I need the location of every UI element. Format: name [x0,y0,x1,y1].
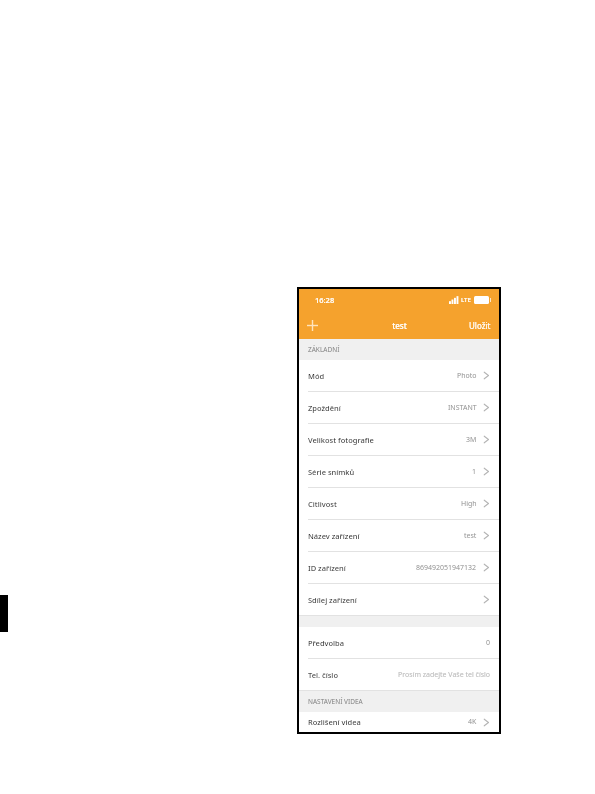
button[interactable]: Sdílej zařízení [299,584,499,616]
staticText: 0 [486,638,491,648]
staticText: 16:28 [315,295,335,305]
staticText: Mód [308,371,325,381]
staticText: ZÁKLADNÍ [308,345,340,354]
staticText: Zpoždění [308,403,341,413]
staticText: NASTAVENÍ VIDEA [308,697,363,706]
button[interactable]: Rozlišení videa [299,712,499,732]
staticText: 1 [472,467,477,477]
staticText: Série snímků [308,467,355,477]
button[interactable]: Velikost fotografie [299,424,499,456]
button[interactable]: ID zařízení [299,552,499,584]
button[interactable]: Add [299,312,325,338]
staticText: 869492051947132 [416,563,477,573]
staticText: test [464,531,477,541]
staticText: Sdílej zařízení [308,595,357,605]
button[interactable]: Zpoždění [299,392,499,424]
staticText: ID zařízení [308,563,346,573]
button[interactable]: Citlivost [299,488,499,520]
staticText: Photo [457,371,477,381]
button[interactable]: Název zařízení [299,520,499,552]
button[interactable]: Tel. číslo [299,659,499,691]
staticText: Tel. číslo [308,670,338,680]
staticText: Předvolba [308,638,345,648]
staticText: INSTANT [448,403,477,413]
staticText: test [392,320,407,331]
staticText: Uložit [469,320,491,331]
staticText: LTE [461,296,471,304]
staticText: Citlivost [308,499,337,509]
staticText: High [461,499,477,509]
button[interactable]: Mód [299,360,499,392]
button[interactable]: Předvolba [299,627,499,659]
staticText: Název zařízení [308,531,360,541]
staticText: Rozlišení videa [308,717,361,727]
staticText: 3M [466,435,477,445]
staticText: 4K [468,717,477,727]
staticText: Prosím zadejte Vaše tel číslo [398,670,491,680]
staticText: Velikost fotografie [308,435,374,445]
button[interactable]: Série snímků [299,456,499,488]
button[interactable]: Uložit [461,314,499,337]
